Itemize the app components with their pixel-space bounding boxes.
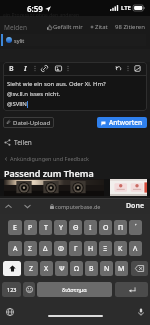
other: Link	[41, 65, 48, 72]
button[interactable]: Shift	[3, 261, 21, 276]
button[interactable]: Κ	[114, 241, 127, 256]
button[interactable]: Next keyboard	[4, 306, 15, 317]
button[interactable]: Gefällt mir	[46, 22, 84, 32]
button[interactable]: Zitat	[89, 22, 109, 32]
button[interactable]: Θ	[69, 220, 82, 235]
button[interactable]: Τ	[39, 220, 52, 235]
button[interactable]: Β	[85, 261, 98, 276]
button[interactable]: Ω	[70, 261, 83, 276]
button[interactable]: 98 Zitieren	[114, 22, 146, 32]
staticText: Φ	[58, 244, 64, 254]
button[interactable]: διάστημα	[37, 282, 112, 297]
button[interactable]: Λ	[129, 241, 142, 256]
staticText: Η	[88, 244, 94, 254]
staticText: 123	[7, 286, 17, 293]
button[interactable]: Backspace	[131, 261, 148, 276]
staticText: B	[9, 64, 14, 73]
staticText: ΄	[135, 223, 137, 233]
button[interactable]: Π	[114, 220, 127, 235]
staticText: @SVⅡN	[7, 100, 27, 108]
button[interactable]: Ε	[8, 220, 22, 235]
button[interactable]: Ρ	[24, 220, 37, 235]
button[interactable]: 123	[2, 282, 21, 297]
button[interactable]: Return	[115, 282, 148, 297]
staticText: @sv.Ⅱ.n isses nicht.	[7, 90, 61, 98]
staticText: Ν	[104, 264, 110, 274]
staticText: sylit	[14, 37, 25, 44]
button[interactable]: Ψ	[55, 261, 68, 276]
staticText: 98 Zitieren	[115, 23, 145, 31]
button[interactable]: Χ	[40, 261, 53, 276]
staticText: LTE	[121, 4, 131, 12]
staticText: Ο	[103, 223, 109, 233]
staticText: Ε	[13, 223, 17, 233]
staticText: computerbase.de	[55, 203, 101, 210]
button[interactable]: Undo	[114, 64, 123, 73]
other: Undo	[115, 65, 122, 72]
staticText: Ρ	[28, 223, 33, 233]
staticText: Done	[126, 201, 145, 211]
button[interactable]: Antworten	[97, 117, 147, 128]
staticText: Datei-Upload	[13, 119, 51, 127]
staticText: Α	[13, 244, 18, 254]
button[interactable]: Ι	[84, 220, 97, 235]
button[interactable]: Σ	[24, 241, 37, 256]
button[interactable]: Done	[121, 198, 150, 214]
staticText: Teilen	[14, 138, 32, 147]
other: Image	[55, 65, 62, 72]
button[interactable]: Teilen	[0, 137, 36, 148]
staticText: Ι	[89, 223, 92, 233]
button[interactable]: Φ	[54, 241, 67, 256]
button[interactable]: Emoji	[23, 282, 35, 297]
staticText: I	[24, 64, 27, 73]
staticText: Μ	[118, 264, 125, 274]
button[interactable]: Preview	[133, 64, 142, 73]
staticText: Σ	[28, 244, 33, 254]
staticText: Ψ	[59, 264, 65, 274]
staticText: Passend zum Thema	[4, 167, 94, 179]
staticText: Sieht wie ein son aus. Oder Xi. Hm?	[7, 80, 106, 88]
staticText: Gefällt mir	[53, 23, 83, 31]
button[interactable]: Ξ	[99, 241, 112, 256]
staticText: Ankündigungen und Feedback	[10, 155, 90, 162]
staticText: Κ	[118, 244, 123, 254]
button[interactable]: Dictation	[135, 306, 146, 317]
button[interactable]: Previous field	[3, 201, 14, 212]
button[interactable]: Η	[84, 241, 97, 256]
button[interactable]: Ζ	[24, 261, 38, 276]
button[interactable]: Link	[40, 64, 49, 73]
staticText: Θ	[73, 223, 79, 233]
staticText: Ζ	[29, 264, 34, 274]
button[interactable]: Melden	[3, 22, 28, 33]
button[interactable]: Α	[8, 241, 22, 256]
staticText: Λ	[133, 244, 138, 254]
staticText: Χ	[44, 264, 49, 274]
button[interactable]: Ankündigungen und Feedback	[4, 154, 90, 163]
staticText: Ξ	[103, 244, 108, 254]
button[interactable]: Datei-Upload	[3, 117, 54, 128]
button[interactable]: Image	[54, 64, 63, 73]
staticText: Β	[89, 264, 94, 274]
staticText: Melden	[4, 23, 27, 32]
button[interactable]: Υ	[54, 220, 67, 235]
staticText: ein Prozessor ohne den anderen	[3, 12, 80, 19]
button[interactable]: Ο	[99, 220, 112, 235]
staticText: Υ	[59, 223, 63, 233]
staticText: Antworten	[109, 118, 143, 127]
staticText: Ω	[74, 264, 80, 274]
other: Preview	[134, 65, 141, 72]
button[interactable]: ΄	[129, 220, 142, 235]
staticText: Π	[118, 223, 124, 233]
button[interactable]: Γ	[69, 241, 82, 256]
staticText: Γ	[74, 244, 78, 254]
button[interactable]: Μ	[115, 261, 128, 276]
staticText: διάστημα	[62, 286, 87, 293]
staticText: Zitat	[95, 23, 108, 31]
staticText: Δ	[43, 244, 48, 254]
button[interactable]: B	[7, 64, 16, 73]
button[interactable]: Next field	[22, 201, 33, 212]
button[interactable]: I	[21, 64, 30, 73]
button[interactable]: Δ	[39, 241, 52, 256]
staticText: 6:59	[27, 3, 43, 14]
button[interactable]: Ν	[100, 261, 113, 276]
